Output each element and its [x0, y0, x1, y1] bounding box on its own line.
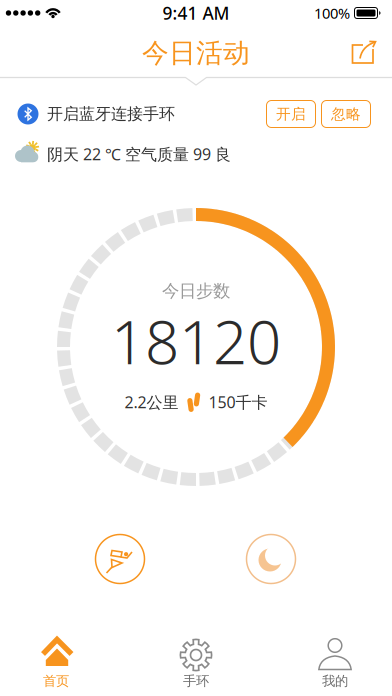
staticText: 150千卡: [208, 391, 267, 413]
staticText: 今日活动: [142, 37, 250, 69]
button[interactable]: 睡眠: [246, 534, 295, 583]
staticText: 2.2公里: [124, 391, 178, 413]
staticText: 手环: [183, 673, 209, 689]
button[interactable]: 忽略: [321, 100, 370, 127]
button[interactable]: 手环: [168, 620, 224, 686]
staticText: 首页: [43, 673, 69, 689]
staticText: 忽略: [331, 105, 361, 123]
staticText: 开启蓝牙连接手环: [47, 104, 175, 124]
staticText: 100%: [314, 3, 350, 23]
button[interactable]: 开启: [266, 100, 315, 127]
staticText: 阴天 22 ℃ 空气质量 99 良: [47, 143, 231, 165]
button[interactable]: 首页: [28, 620, 84, 686]
staticText: 今日步数: [162, 280, 230, 302]
button[interactable]: 我的: [307, 620, 363, 686]
button[interactable]: 运动: [95, 534, 144, 583]
staticText: 我的: [322, 673, 348, 689]
button[interactable]: 分享: [348, 38, 380, 70]
staticText: 9:41 AM: [162, 1, 229, 24]
staticText: 18120: [111, 301, 281, 381]
staticText: 开启: [276, 105, 306, 123]
